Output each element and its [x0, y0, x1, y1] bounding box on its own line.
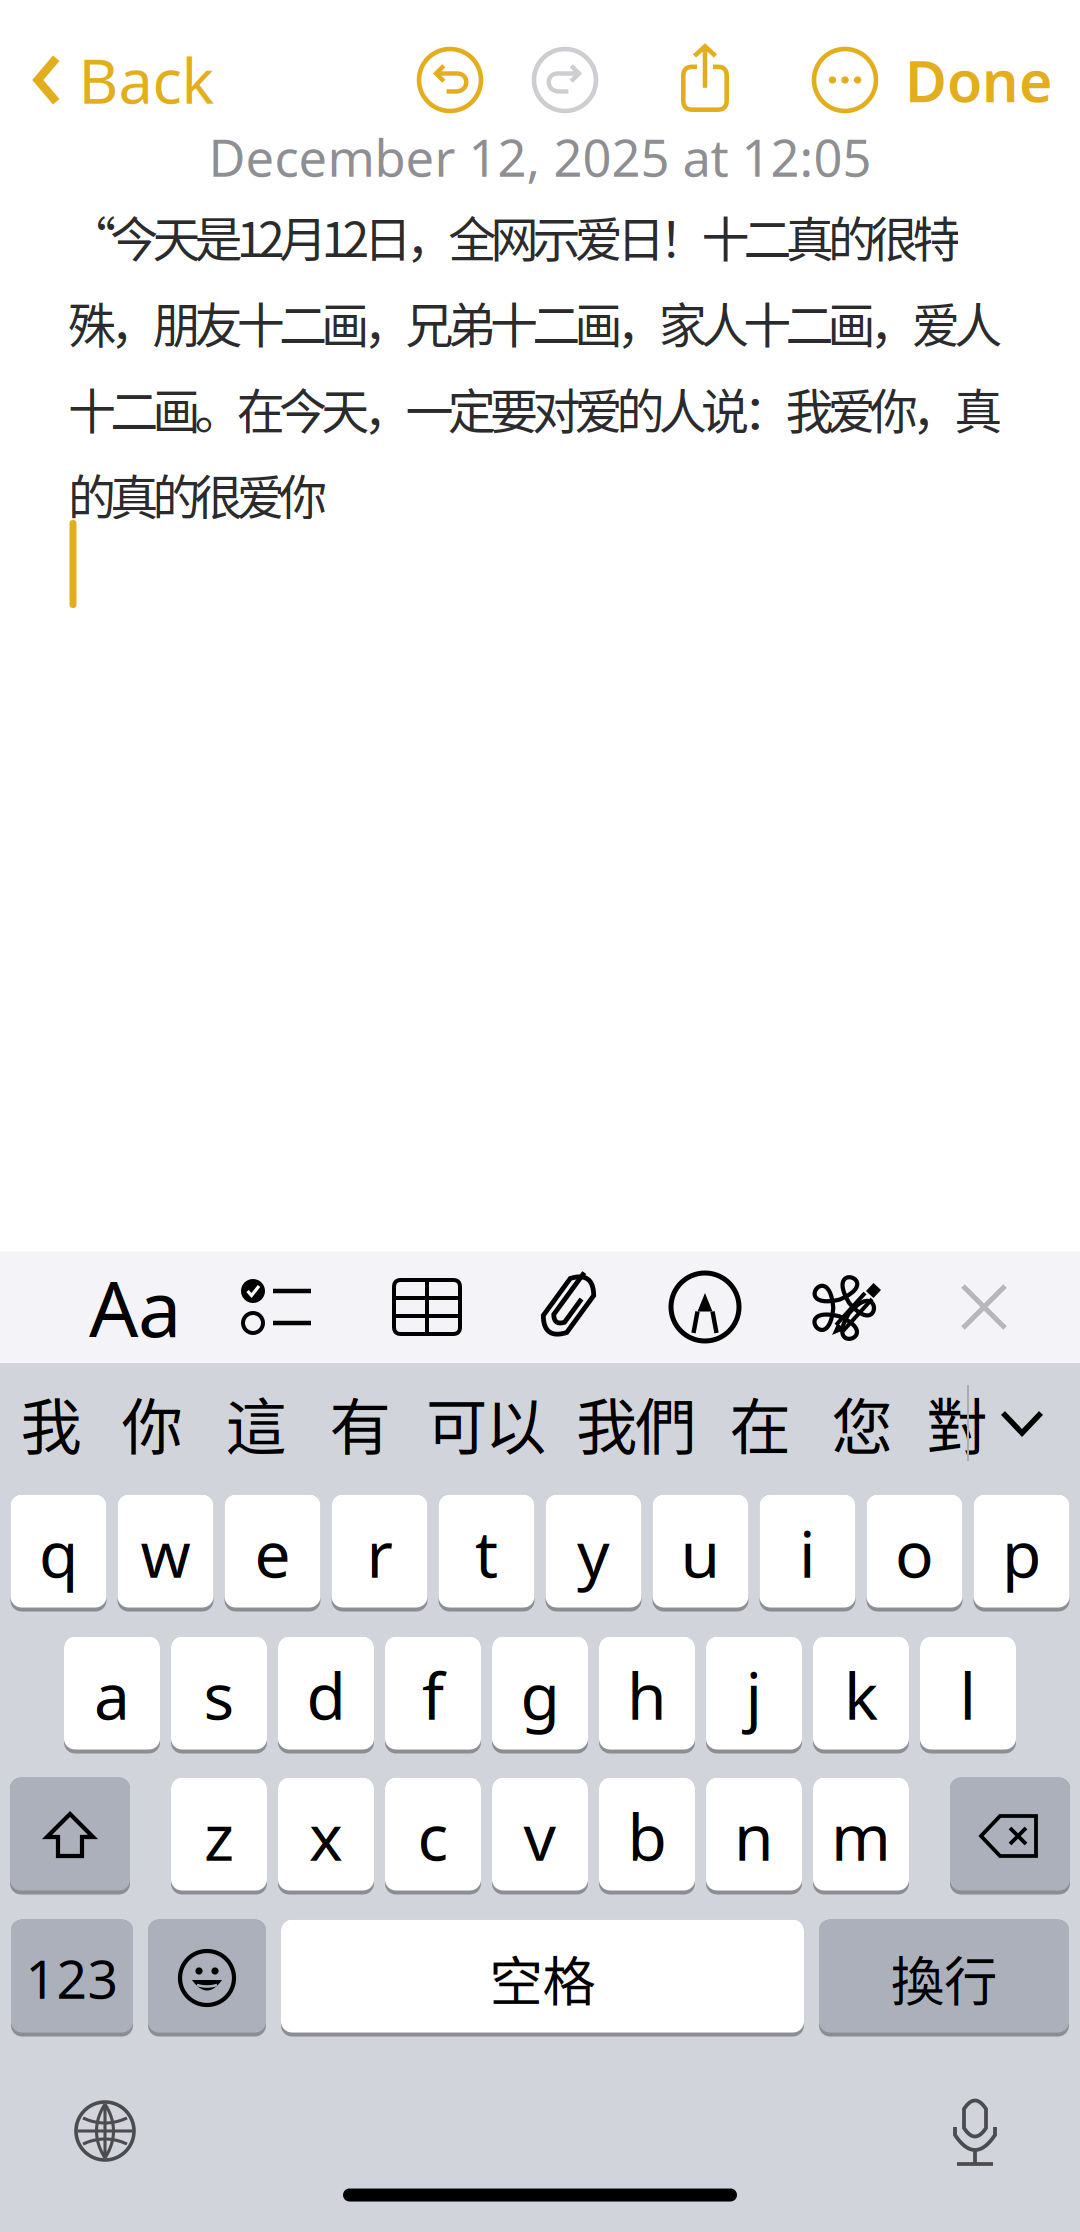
button[interactable]: p — [973, 1494, 1069, 1611]
staticText: h — [627, 1652, 667, 1737]
button[interactable]: 空格 — [281, 1919, 804, 2036]
staticText: 空格 — [489, 1939, 595, 2017]
staticText: 我們 — [576, 1379, 696, 1467]
button[interactable]: Checklist — [217, 1251, 337, 1362]
button[interactable]: t — [438, 1494, 534, 1611]
staticText: f — [422, 1652, 444, 1737]
button[interactable]: k — [813, 1636, 909, 1753]
button[interactable]: q — [10, 1494, 106, 1611]
button[interactable]: b — [599, 1777, 695, 1894]
staticText: k — [844, 1652, 878, 1737]
button[interactable]: h — [599, 1636, 695, 1753]
staticText: z — [204, 1793, 234, 1878]
staticText: December 12, 2025 at 12:05 — [208, 123, 871, 191]
button[interactable]: Close — [924, 1251, 1044, 1362]
staticText: s — [203, 1652, 234, 1737]
button[interactable]: u — [652, 1494, 748, 1611]
staticText: u — [680, 1510, 720, 1595]
button[interactable]: 換行 — [819, 1919, 1069, 2036]
button[interactable]: m — [813, 1777, 909, 1894]
staticText: y — [577, 1510, 610, 1595]
staticText: 可以 — [426, 1379, 546, 1467]
button[interactable]: f — [385, 1636, 481, 1753]
button[interactable]: Back — [0, 25, 238, 135]
staticText: 對 — [926, 1379, 987, 1467]
button[interactable]: 123 — [11, 1919, 133, 2036]
button[interactable]: 您 — [813, 1371, 910, 1475]
button[interactable]: Format — [75, 1251, 195, 1362]
staticText: e — [254, 1510, 290, 1595]
button[interactable]: 你 — [103, 1371, 200, 1475]
staticText: a — [94, 1652, 130, 1737]
staticText: m — [831, 1793, 891, 1878]
button[interactable]: e — [224, 1494, 320, 1611]
button[interactable]: Hide candidates — [979, 1371, 1065, 1475]
staticText: d — [306, 1652, 345, 1737]
button[interactable]: v — [492, 1777, 588, 1894]
button[interactable]: More — [814, 49, 876, 111]
button[interactable]: Shift — [10, 1777, 130, 1894]
button[interactable]: Redo — [534, 49, 596, 111]
staticText: 的真的很爱你 — [68, 459, 327, 529]
staticText: o — [895, 1510, 934, 1595]
staticText: x — [309, 1793, 343, 1878]
staticText: 我 — [20, 1379, 81, 1467]
button[interactable]: Table — [367, 1251, 487, 1362]
button[interactable]: r — [331, 1494, 427, 1611]
staticText: c — [417, 1793, 448, 1878]
staticText: l — [959, 1652, 976, 1737]
button[interactable]: Attach — [508, 1251, 628, 1362]
staticText: 殊，朋友十二画，兄弟十二画，家人十二画，爱人 — [68, 287, 1002, 357]
staticText: p — [1002, 1510, 1041, 1595]
button[interactable]: 我 — [2, 1371, 99, 1475]
staticText: 十二画。在今天，一定要对爱的人说：我爱你，真 — [68, 373, 1002, 443]
button[interactable]: Scribble — [785, 1251, 905, 1362]
staticText: v — [523, 1793, 556, 1878]
button[interactable]: w — [117, 1494, 213, 1611]
button[interactable]: 這 — [207, 1371, 304, 1475]
button[interactable]: y — [545, 1494, 641, 1611]
staticText: 您 — [831, 1379, 892, 1467]
button[interactable]: i — [759, 1494, 855, 1611]
button[interactable]: g — [492, 1636, 588, 1753]
staticText: 這 — [225, 1379, 286, 1467]
button[interactable]: d — [278, 1636, 374, 1753]
button[interactable]: z — [171, 1777, 267, 1894]
button[interactable]: 可以 — [408, 1371, 564, 1475]
button[interactable]: s — [171, 1636, 267, 1753]
staticText: w — [140, 1510, 190, 1595]
button[interactable]: a — [64, 1636, 160, 1753]
staticText: j — [745, 1652, 762, 1737]
staticText: n — [734, 1793, 774, 1878]
button[interactable]: 我們 — [558, 1371, 714, 1475]
staticText: 換行 — [891, 1939, 997, 2017]
staticText: 有 — [329, 1379, 390, 1467]
button[interactable]: Undo — [419, 49, 481, 111]
button[interactable]: Emoji — [148, 1919, 266, 2036]
staticText: 123 — [25, 1943, 118, 2013]
staticText: i — [799, 1510, 816, 1595]
button[interactable]: j — [706, 1636, 802, 1753]
staticText: 在 — [729, 1379, 790, 1467]
staticText: b — [627, 1793, 666, 1878]
button[interactable]: 對 — [908, 1371, 1005, 1475]
staticText: r — [366, 1510, 392, 1595]
button[interactable]: x — [278, 1777, 374, 1894]
button[interactable]: Delete — [950, 1777, 1070, 1894]
staticText: Back — [78, 39, 214, 121]
button[interactable]: c — [385, 1777, 481, 1894]
button[interactable]: l — [920, 1636, 1016, 1753]
staticText: 你 — [121, 1379, 182, 1467]
staticText: q — [39, 1510, 78, 1595]
button[interactable]: 有 — [311, 1371, 408, 1475]
button[interactable]: 在 — [711, 1371, 808, 1475]
button[interactable]: Done — [904, 25, 1054, 135]
staticText: t — [475, 1510, 498, 1595]
button[interactable]: Share — [680, 43, 730, 113]
button[interactable]: n — [706, 1777, 802, 1894]
button[interactable]: Markup — [645, 1251, 765, 1362]
button[interactable]: o — [866, 1494, 962, 1611]
button[interactable]: Switch keyboard — [57, 2083, 153, 2179]
staticText: Aa — [89, 1256, 181, 1358]
button[interactable]: Dictate — [927, 2083, 1023, 2179]
